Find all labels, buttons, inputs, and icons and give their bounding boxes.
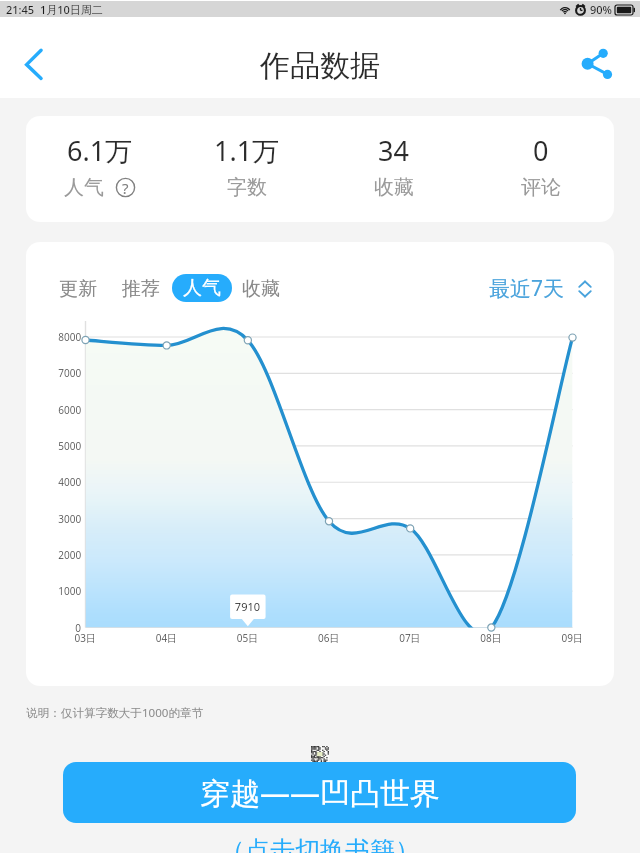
staticText: 最近7天 bbox=[489, 274, 565, 303]
button[interactable]: Help bbox=[116, 178, 135, 197]
staticText: 1.1万 bbox=[214, 132, 280, 169]
staticText: 评论 bbox=[521, 175, 561, 200]
button[interactable]: Share bbox=[576, 39, 628, 95]
staticText: （点击切换书籍） bbox=[220, 835, 420, 853]
button[interactable]: （点击切换书籍） bbox=[0, 835, 640, 853]
button[interactable]: 更新 bbox=[59, 275, 97, 302]
staticText: 说明：仅计算字数大于1000的章节 bbox=[26, 705, 204, 721]
button[interactable]: 穿越——凹凸世界 bbox=[63, 762, 576, 823]
staticText: 作品数据 bbox=[260, 47, 380, 85]
staticText: 21:45 1月10日周二 bbox=[6, 2, 103, 17]
button[interactable]: 人气 bbox=[172, 274, 232, 302]
staticText: 90% bbox=[590, 2, 612, 17]
staticText: 6.1万 bbox=[67, 132, 133, 169]
staticText: 字数 bbox=[227, 175, 267, 200]
staticText: 更新 bbox=[59, 277, 97, 301]
staticText: 推荐 bbox=[122, 277, 160, 301]
staticText: 收藏 bbox=[242, 277, 280, 301]
staticText: 人气 bbox=[64, 175, 104, 200]
button[interactable]: 推荐 bbox=[122, 275, 160, 302]
staticText: 穿越——凹凸世界 bbox=[200, 772, 440, 813]
button[interactable]: 收藏 bbox=[242, 275, 280, 302]
staticText: 34 bbox=[378, 132, 409, 169]
button[interactable]: Back bbox=[8, 39, 60, 95]
staticText: ? bbox=[122, 178, 129, 197]
button[interactable]: 最近7天 bbox=[489, 274, 594, 303]
staticText: 0 bbox=[533, 132, 549, 169]
staticText: 收藏 bbox=[374, 175, 414, 200]
staticText: 人气 bbox=[183, 276, 221, 300]
